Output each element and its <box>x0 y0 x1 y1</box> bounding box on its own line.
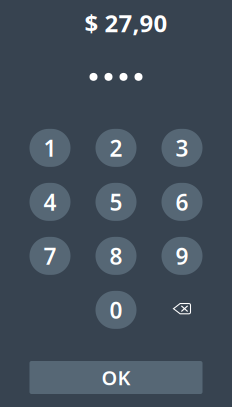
button[interactable]: OK <box>29 361 202 394</box>
staticText: 4 <box>43 187 56 217</box>
staticText: 3 <box>175 133 188 163</box>
staticText: 7 <box>43 241 56 271</box>
staticText: 2 <box>109 133 122 163</box>
button[interactable]: Delete <box>161 291 202 329</box>
staticText: 1 <box>43 133 56 163</box>
button[interactable]: 1 <box>29 129 70 167</box>
button[interactable]: 3 <box>161 129 202 167</box>
button[interactable]: 2 <box>95 129 136 167</box>
staticText: $ 27,90 <box>84 7 167 39</box>
button[interactable]: 0 <box>95 291 136 329</box>
button[interactable]: 4 <box>29 183 70 221</box>
staticText: 8 <box>109 241 122 271</box>
staticText: 0 <box>109 295 122 325</box>
button[interactable]: 8 <box>95 237 136 275</box>
staticText: 5 <box>109 187 122 217</box>
button[interactable]: 6 <box>161 183 202 221</box>
button[interactable]: 5 <box>95 183 136 221</box>
staticText: 6 <box>175 187 188 217</box>
button[interactable]: 9 <box>161 237 202 275</box>
button[interactable]: 7 <box>29 237 70 275</box>
staticText: OK <box>101 364 130 391</box>
staticText: 9 <box>175 241 188 271</box>
